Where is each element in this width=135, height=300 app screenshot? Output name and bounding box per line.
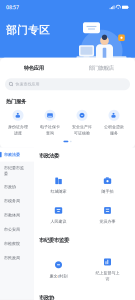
- staticText: 身份证办理: [8, 124, 28, 129]
- staticText: 安全生产许: [72, 124, 92, 129]
- staticText: 访: [105, 277, 109, 281]
- staticText: 市政法委: [39, 152, 59, 159]
- staticText: 热门服务: [6, 98, 26, 105]
- staticText: 市政协: [39, 294, 54, 300]
- button[interactable]: 市纪委市监: [0, 162, 34, 180]
- button[interactable]: 市民政局: [0, 251, 34, 265]
- staticText: 市政法委: [4, 152, 20, 157]
- button[interactable]: 公积金贷款: [98, 110, 130, 136]
- staticText: 08:57: [6, 4, 19, 11]
- button[interactable]: 市政协: [0, 180, 34, 194]
- staticText: 随手拍: [101, 189, 113, 194]
- button[interactable]: 快速查找应用: [5, 78, 130, 90]
- button[interactable]: 市教体局: [0, 208, 34, 222]
- staticText: 特色应用: [24, 65, 44, 71]
- staticText: 党员办事: [99, 219, 115, 224]
- staticText: 进度: [14, 131, 22, 136]
- staticText: 市公安局: [4, 227, 20, 232]
- button[interactable]: 安全生产许: [66, 110, 98, 136]
- button[interactable]: 红城随家: [34, 176, 83, 194]
- button[interactable]: 电子社保卡: [34, 110, 66, 136]
- button[interactable]: 市政法委: [0, 147, 34, 162]
- staticText: 市纪委市监委: [39, 237, 69, 243]
- button[interactable]: 纪上监督与上: [83, 257, 132, 281]
- staticText: 部门旗舰店: [89, 65, 114, 71]
- staticText: 电子社保卡: [40, 124, 60, 129]
- staticText: 廉文e时刻: [49, 273, 67, 279]
- staticText: 市检察院: [4, 241, 20, 246]
- staticText: 人民建议: [50, 219, 66, 224]
- button[interactable]: 部门旗舰店: [67, 58, 135, 78]
- staticText: 快速查找应用: [16, 82, 40, 87]
- staticText: 纪上监督与上: [95, 270, 119, 275]
- button[interactable]: 随手拍: [83, 176, 132, 194]
- button[interactable]: 廉文e时刻: [34, 260, 83, 279]
- staticText: 查询: [46, 131, 54, 136]
- staticText: 可证核验: [74, 131, 90, 136]
- button[interactable]: 党员办事: [83, 206, 132, 224]
- button[interactable]: 市税务局: [0, 194, 34, 208]
- staticText: 委: [4, 171, 8, 176]
- button[interactable]: 身份证办理: [2, 110, 34, 136]
- button[interactable]: 市公安局: [0, 222, 34, 236]
- staticText: 市民政局: [4, 255, 20, 260]
- staticText: 部门专区: [6, 24, 50, 37]
- button[interactable]: 特色应用: [0, 58, 67, 78]
- staticText: 公积金贷款: [104, 124, 124, 129]
- button[interactable]: 人民建议: [34, 206, 83, 224]
- staticText: 市税务局: [4, 199, 20, 203]
- staticText: 市教体局: [4, 213, 20, 218]
- staticText: 服务: [110, 131, 118, 136]
- staticText: 市纪委市监: [4, 165, 24, 170]
- button[interactable]: 市检察院: [0, 236, 34, 251]
- staticText: 红城随家: [50, 189, 66, 194]
- staticText: 市政协: [4, 184, 16, 189]
